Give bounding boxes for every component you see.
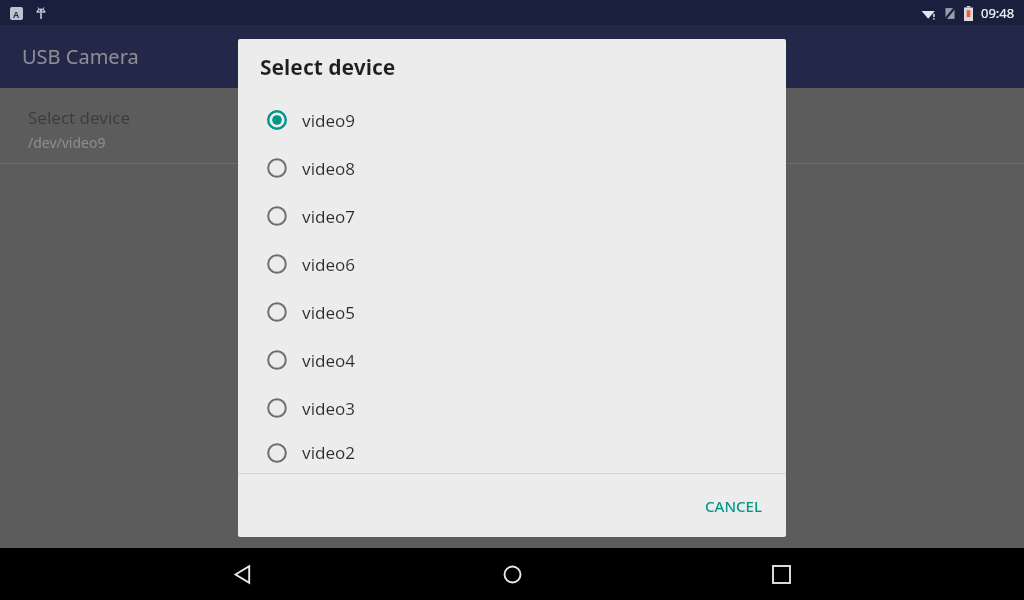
staticText: CANCEL bbox=[705, 496, 762, 516]
button[interactable]: Select device bbox=[0, 88, 1024, 163]
staticText: A bbox=[13, 8, 20, 20]
staticText: Select device bbox=[260, 53, 396, 82]
staticText: /dev/video9 bbox=[28, 133, 106, 152]
staticText: video9 bbox=[302, 109, 356, 132]
button[interactable]: video5 bbox=[238, 288, 786, 336]
staticText: USB Camera bbox=[22, 43, 139, 70]
button[interactable]: Home bbox=[486, 548, 538, 600]
staticText: video8 bbox=[302, 157, 356, 180]
staticText: video4 bbox=[302, 349, 356, 372]
staticText: video5 bbox=[302, 301, 356, 324]
button[interactable]: video2 bbox=[238, 432, 786, 473]
staticText: video6 bbox=[302, 253, 356, 276]
button[interactable]: Recents bbox=[755, 548, 807, 600]
staticText: 09:48 bbox=[981, 4, 1015, 22]
staticText: Select device bbox=[28, 106, 131, 129]
button[interactable]: video7 bbox=[238, 192, 786, 240]
button[interactable]: video3 bbox=[238, 384, 786, 432]
button[interactable]: video8 bbox=[238, 144, 786, 192]
staticText: video3 bbox=[302, 397, 356, 420]
button[interactable]: video4 bbox=[238, 336, 786, 384]
button[interactable]: CANCEL bbox=[693, 486, 774, 526]
staticText: video7 bbox=[302, 205, 356, 228]
button[interactable]: video9 bbox=[238, 96, 786, 144]
button[interactable]: Back bbox=[217, 548, 269, 600]
staticText: video2 bbox=[302, 441, 356, 464]
button[interactable]: video6 bbox=[238, 240, 786, 288]
